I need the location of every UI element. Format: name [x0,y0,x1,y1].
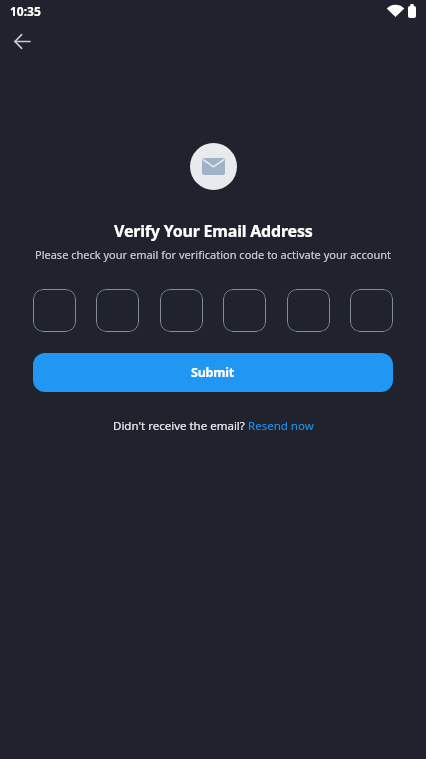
staticText: 10:35 [10,3,41,19]
staticText: Submit [191,364,235,381]
staticText: Verify Your Email Address [114,220,313,242]
staticText: Didn't receive the email? [113,418,248,434]
button[interactable] [8,27,36,55]
button[interactable] [223,289,266,332]
staticText: Please check your email for verification… [35,247,392,262]
button[interactable]: Didn't receive the email? [0,418,426,434]
button[interactable]: Submit [33,353,393,392]
button[interactable] [33,289,76,332]
staticText: Resend now [248,418,314,434]
button[interactable] [96,289,139,332]
button[interactable] [350,289,393,332]
button[interactable] [160,289,203,332]
button[interactable] [287,289,330,332]
